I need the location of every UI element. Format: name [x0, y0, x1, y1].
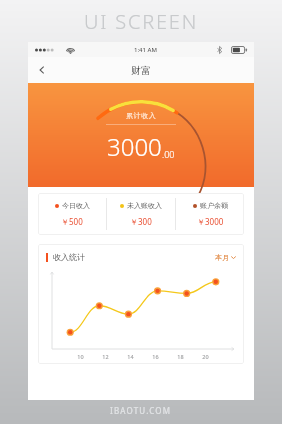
staticText: UI SCREEN [84, 8, 199, 35]
staticText: ￥300 [130, 216, 152, 227]
staticText: 累计收入 [126, 111, 157, 120]
staticText: 今日收入 [62, 201, 90, 210]
staticText: 14 [118, 353, 143, 360]
staticText: 12 [93, 353, 118, 360]
staticText: .00 [162, 148, 175, 160]
staticText: IBAOTU.COM [110, 405, 172, 416]
button[interactable]: Back [32, 60, 52, 80]
staticText: 1:41 AM [134, 46, 157, 54]
staticText: ￥500 [61, 216, 83, 227]
button[interactable]: 未入账收入 [107, 193, 175, 235]
staticText: 账户余额 [200, 201, 228, 210]
staticText: 本月 [215, 253, 229, 262]
button[interactable]: 本月 [215, 253, 236, 262]
staticText: 16 [143, 353, 168, 360]
staticText: 财富 [131, 64, 151, 77]
button[interactable]: 今日收入 [38, 193, 106, 235]
staticText: 未入账收入 [127, 201, 162, 210]
staticText: 18 [168, 353, 193, 360]
staticText: ￥3000 [197, 216, 224, 227]
staticText: 收入统计 [53, 252, 85, 262]
staticText: 10 [68, 353, 93, 360]
button[interactable]: 账户余额 [176, 193, 244, 235]
staticText: 20 [193, 353, 218, 360]
staticText: 3000 [107, 130, 162, 163]
